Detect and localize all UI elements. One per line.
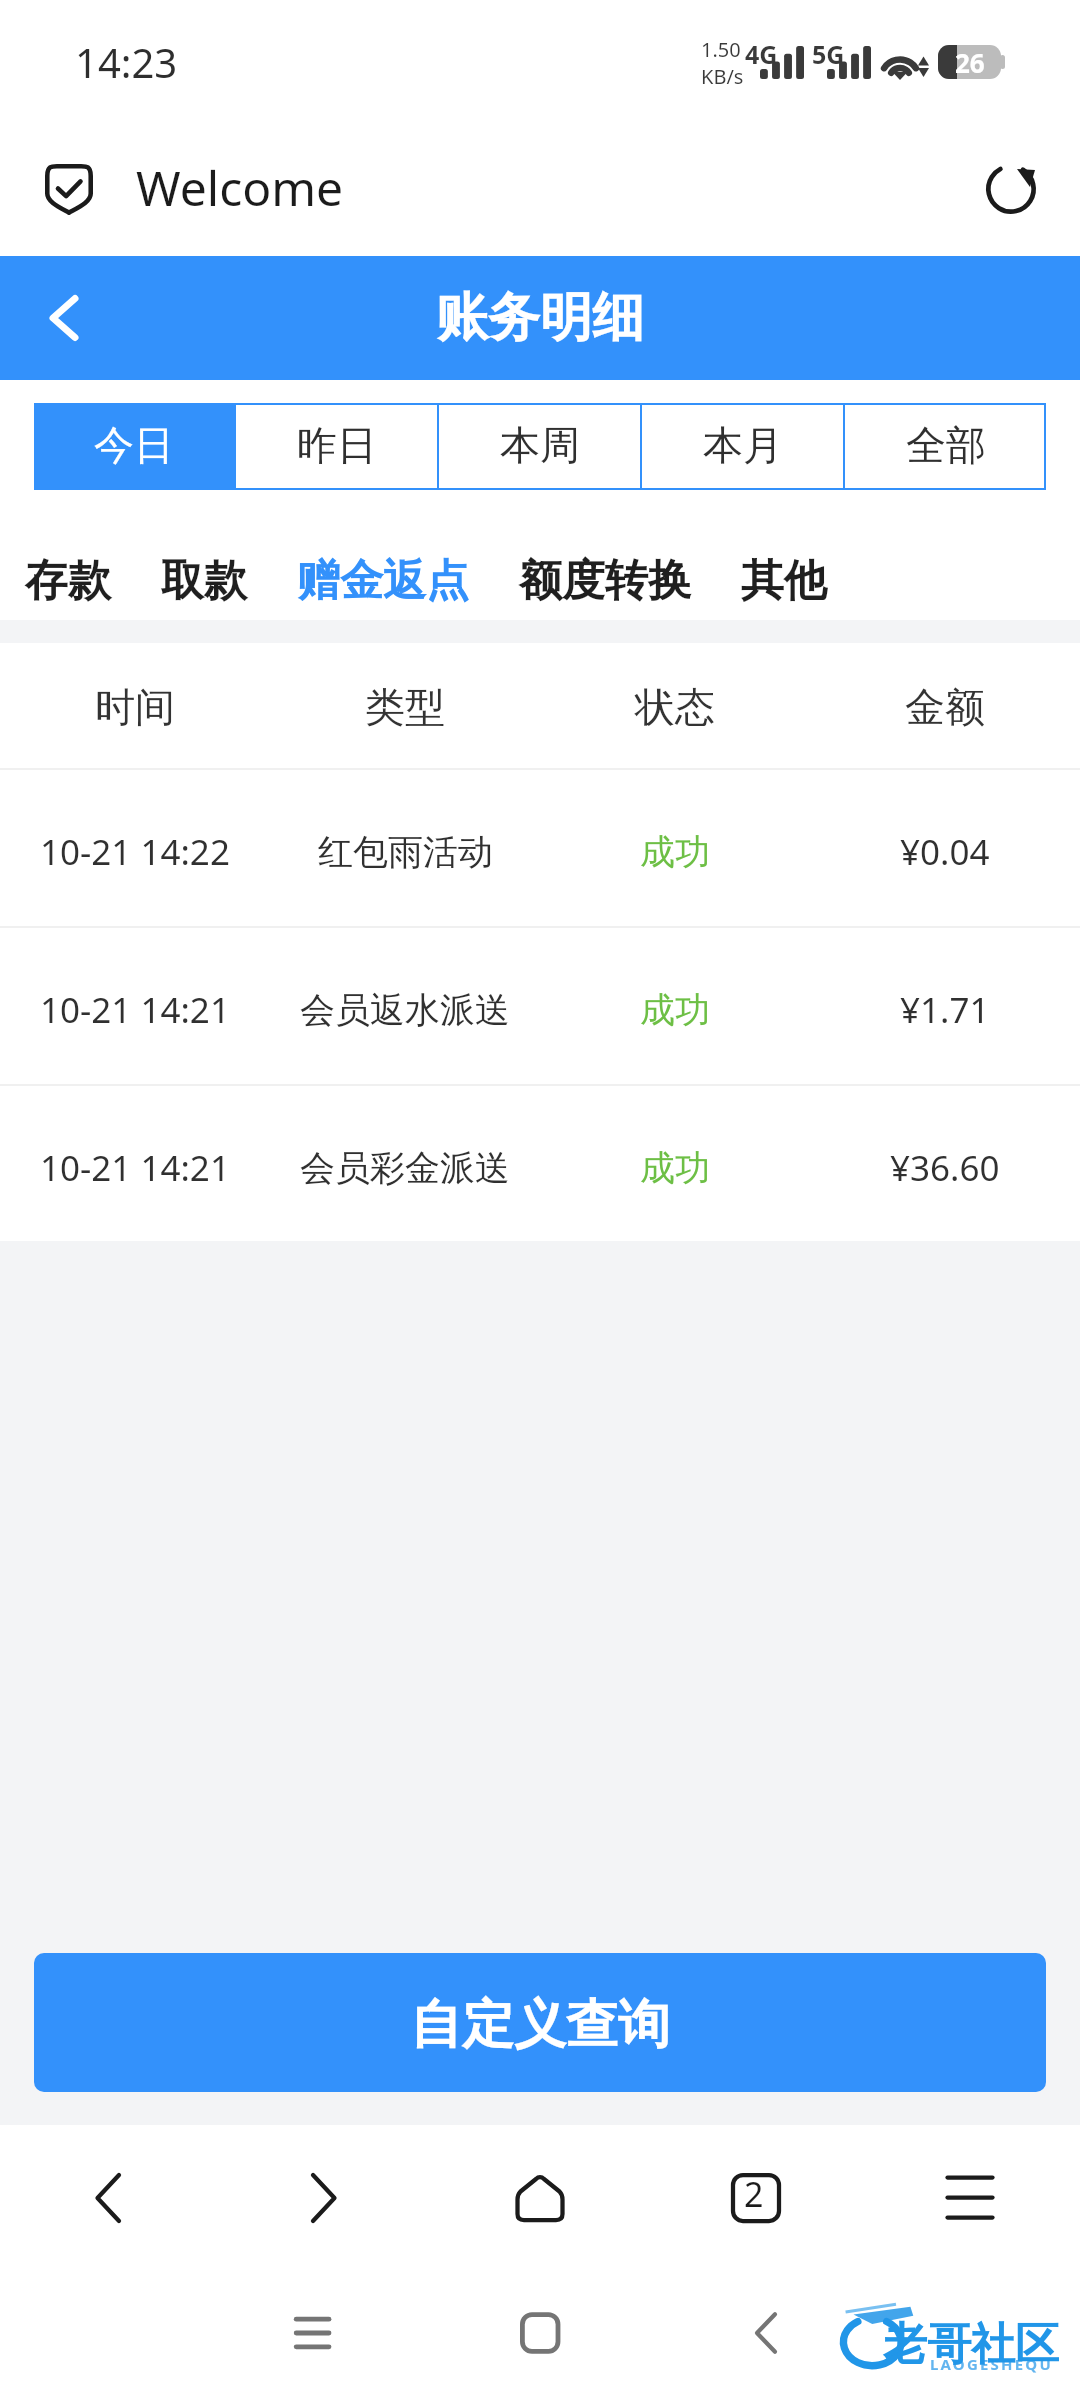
staticText: Welcome [136,155,344,220]
staticText: ¥36.60 [890,1144,1000,1192]
staticText: 账务明细 [436,285,644,351]
staticText: 14:23 [75,35,178,89]
staticText: 存款 [25,554,111,608]
staticText: 会员返水派送 [300,988,510,1032]
button[interactable]: 自定义查询 [34,1953,1046,2092]
button[interactable]: Recents [263,2285,363,2381]
staticText: 取款 [161,554,247,608]
staticText: 1.50 [701,36,741,63]
staticText: 成功 [640,1146,710,1190]
button[interactable]: 10-21 14:21 [0,928,1080,1084]
staticText: 今日 [94,420,174,470]
staticText: 类型 [365,682,445,732]
staticText: LAOGESHEQU [930,2354,1053,2374]
staticText: KB/s [701,63,744,90]
staticText: 10-21 14:21 [40,1144,230,1192]
button[interactable]: 全部 [845,403,1046,490]
staticText: 老哥社区 [883,2317,1059,2372]
button[interactable]: 存款 [25,514,111,626]
staticText: ¥0.04 [900,828,990,876]
button[interactable]: 赠金返点 [297,514,469,626]
staticText: 额度转换 [519,554,691,608]
button[interactable]: 10-21 14:21 [0,1086,1080,1241]
button[interactable]: 取款 [161,514,247,626]
staticText: 本周 [500,420,580,470]
staticText: 状态 [635,682,715,732]
staticText: 会员彩金派送 [300,1146,510,1190]
staticText: 10-21 14:21 [40,986,230,1034]
staticText: 全部 [906,420,986,470]
button[interactable]: Home [486,2139,594,2271]
staticText: 时间 [95,682,175,732]
button[interactable]: 昨日 [236,403,437,490]
button[interactable]: Refresh [983,161,1039,217]
staticText: 金额 [905,682,985,732]
staticText: 2 [744,2171,764,2217]
button[interactable]: Home [490,2285,590,2381]
staticText: 红包雨活动 [318,830,493,874]
button[interactable]: 其他 [741,514,827,626]
staticText: 5G [812,37,845,71]
staticText: 26 [955,45,985,79]
button[interactable]: Back [54,2139,162,2271]
staticText: 其他 [741,554,827,608]
staticText: 10-21 14:22 [40,828,230,876]
button[interactable]: 本周 [439,403,640,490]
button[interactable]: Tabs [702,2139,810,2271]
button[interactable]: Back [717,2285,817,2381]
staticText: 4G [745,37,778,71]
staticText: 本月 [703,420,783,470]
button[interactable]: 额度转换 [519,514,691,626]
button[interactable]: Back [34,287,96,349]
staticText: ¥1.71 [900,986,990,1034]
button[interactable]: 10-21 14:22 [0,770,1080,926]
staticText: 赠金返点 [297,554,469,608]
button[interactable]: Menu [916,2139,1024,2271]
button[interactable]: 本月 [642,403,843,490]
staticText: 成功 [640,988,710,1032]
staticText: 昨日 [297,420,377,470]
staticText: 成功 [640,830,710,874]
staticText: 自定义查询 [410,1992,670,2058]
button[interactable]: 今日 [34,403,234,490]
button[interactable]: Forward [270,2139,378,2271]
